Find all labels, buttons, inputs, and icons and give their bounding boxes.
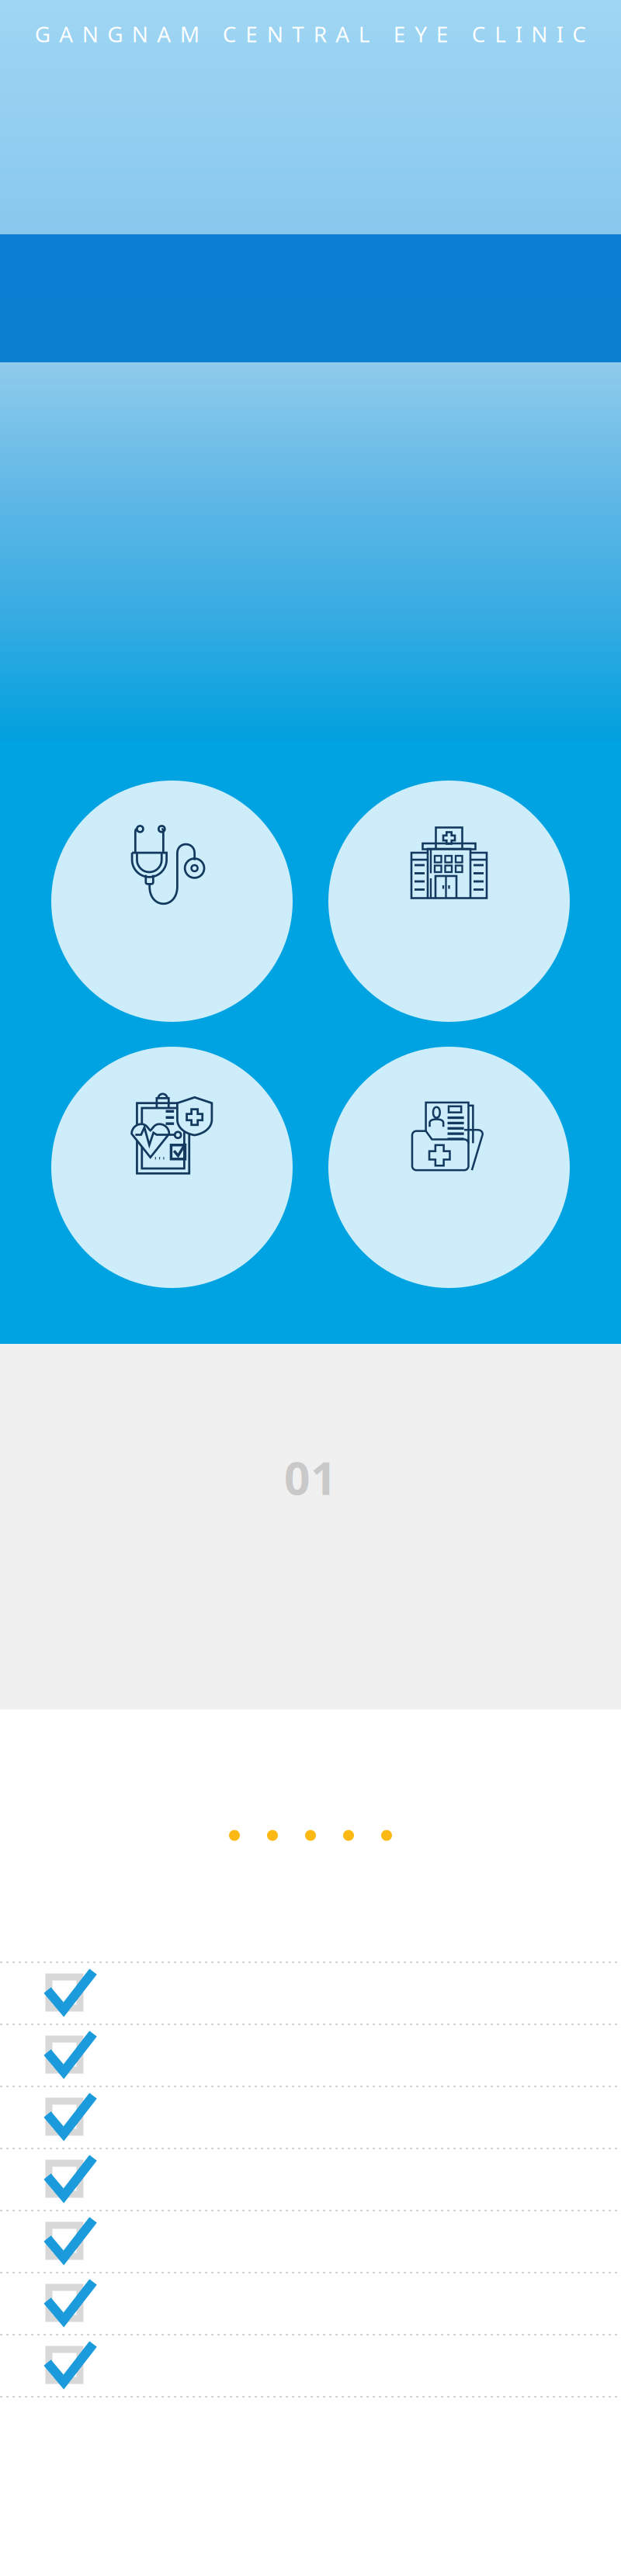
button[interactable]: 체크 항목	[0, 2211, 621, 2272]
button[interactable]: 체크 항목	[0, 2025, 621, 2086]
button[interactable]: 병원소개	[328, 781, 570, 1022]
button[interactable]: 진료기록	[328, 1047, 570, 1288]
button[interactable]: 체크 항목	[0, 1963, 621, 2024]
button[interactable]: 체크 항목	[0, 2149, 621, 2210]
staticText: GANGNAM CENTRAL EYE CLINIC	[35, 19, 586, 48]
button[interactable]: 진료안내	[51, 781, 293, 1022]
button[interactable]: 체크 항목	[0, 2335, 621, 2396]
staticText: 01	[284, 1447, 337, 1508]
button[interactable]: 건강검진	[51, 1047, 293, 1288]
button[interactable]: 체크 항목	[0, 2273, 621, 2334]
button[interactable]: 체크 항목	[0, 2087, 621, 2148]
